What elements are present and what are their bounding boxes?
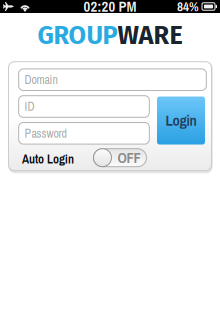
- staticText: ID: [24, 98, 34, 115]
- staticText: Password: [24, 125, 66, 141]
- staticText: Domain: [24, 72, 57, 88]
- staticText: 84%: [177, 0, 199, 15]
- button[interactable]: OFF: [93, 149, 146, 167]
- staticText: GROUP: [37, 20, 117, 51]
- staticText: WARE: [117, 20, 182, 51]
- staticText: OFF: [117, 148, 140, 168]
- staticText: Login: [165, 111, 196, 130]
- staticText: Auto Login: [22, 151, 74, 167]
- button[interactable]: Login: [157, 96, 205, 144]
- staticText: 02:20 PM: [83, 0, 136, 16]
